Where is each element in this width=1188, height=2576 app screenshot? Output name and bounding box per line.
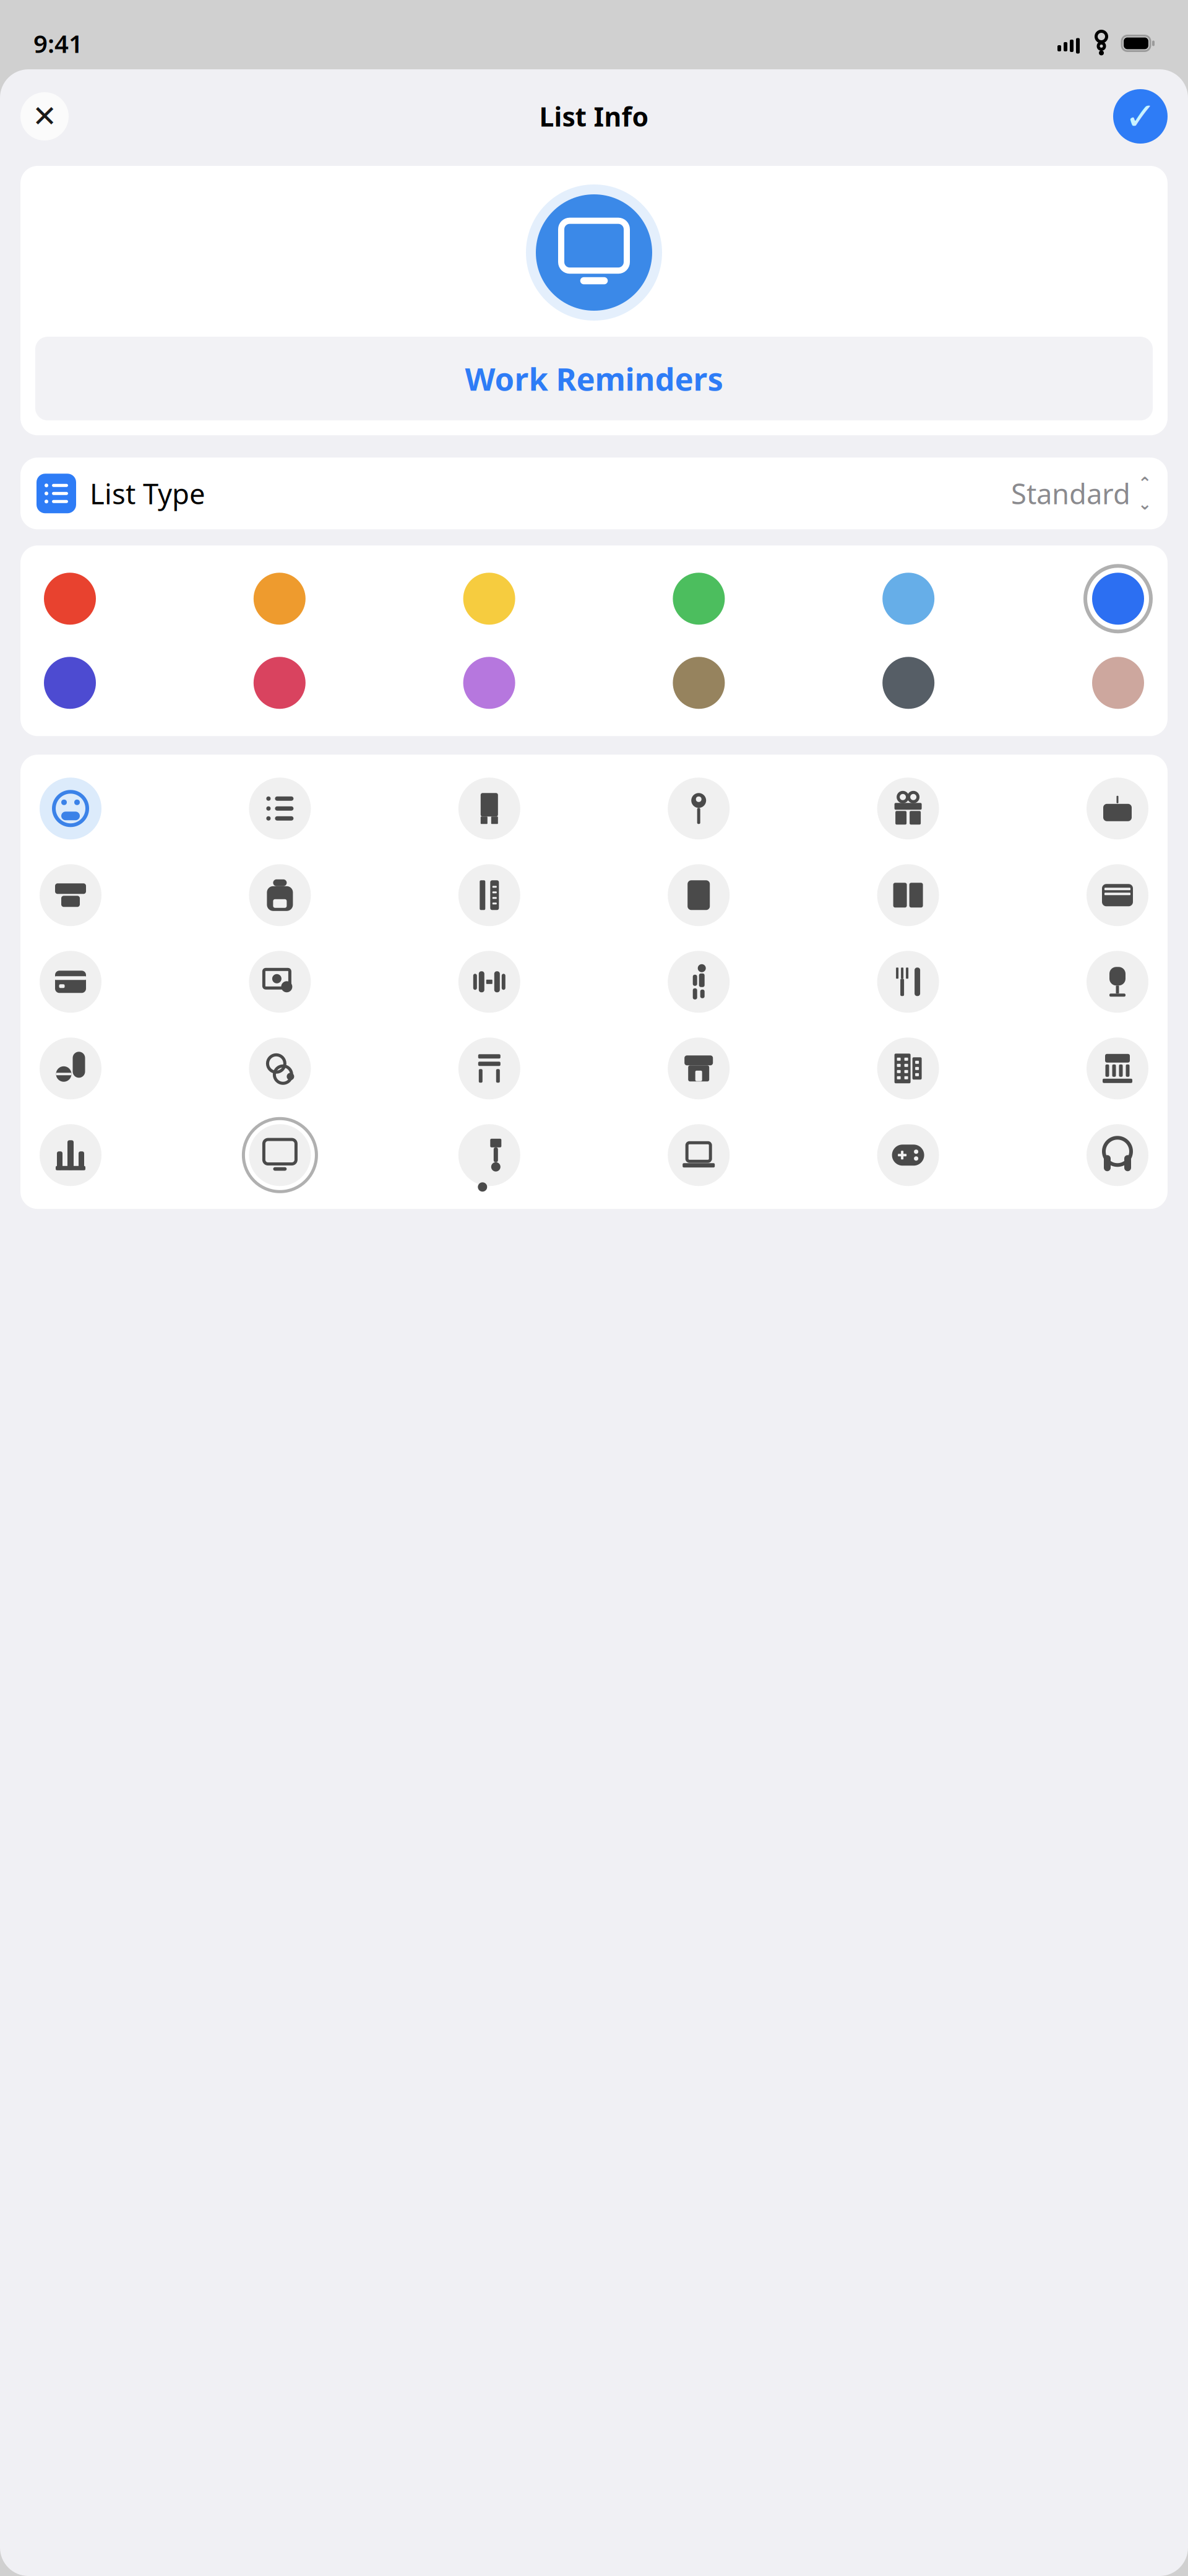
- button[interactable]: Display: [243, 1119, 316, 1192]
- button[interactable]: Colour 11: [874, 648, 943, 718]
- button[interactable]: Music: [453, 1119, 526, 1192]
- button[interactable]: Wallet: [1081, 859, 1154, 932]
- button[interactable]: Colour 1: [35, 564, 105, 633]
- button[interactable]: Book: [872, 859, 945, 932]
- button[interactable]: Colour 12: [1083, 648, 1153, 718]
- button[interactable]: House: [662, 1032, 735, 1105]
- button[interactable]: Colour 7: [35, 648, 105, 718]
- staticText: Work Reminders: [465, 358, 723, 399]
- staticText: ✓: [1125, 95, 1156, 138]
- button[interactable]: Credit card: [34, 945, 107, 1018]
- button[interactable]: Done: [1113, 89, 1168, 144]
- button[interactable]: Colour 2: [245, 564, 314, 633]
- button[interactable]: Dining: [872, 945, 945, 1018]
- button[interactable]: Bookmark: [453, 772, 526, 845]
- button[interactable]: Gift: [872, 772, 945, 845]
- button[interactable]: Pin: [662, 772, 735, 845]
- button[interactable]: Smiley: [34, 772, 107, 845]
- button[interactable]: Document: [662, 859, 735, 932]
- button[interactable]: Game controller: [872, 1119, 945, 1192]
- staticText: ✕: [32, 100, 57, 133]
- button[interactable]: Chair: [453, 1032, 526, 1105]
- button[interactable]: Laptop: [662, 1119, 735, 1192]
- staticText: ⌄: [1138, 494, 1151, 513]
- button[interactable]: Wine glass: [1081, 945, 1154, 1018]
- button[interactable]: List Type: [20, 458, 1168, 529]
- button[interactable]: Colour 4: [664, 564, 733, 633]
- button[interactable]: Colour 9: [455, 648, 524, 718]
- button[interactable]: Stethoscope: [243, 1032, 316, 1105]
- button[interactable]: Running: [662, 945, 735, 1018]
- button[interactable]: Cake: [1081, 772, 1154, 845]
- button[interactable]: Building: [872, 1032, 945, 1105]
- staticText: ⌃: [1138, 474, 1151, 493]
- button[interactable]: Colour 5: [874, 564, 943, 633]
- staticText: 9:41: [33, 27, 83, 60]
- staticText: List Type: [90, 475, 205, 512]
- staticText: Standard: [1011, 475, 1130, 512]
- button[interactable]: Colour 3: [455, 564, 524, 633]
- button[interactable]: List: [243, 772, 316, 845]
- button[interactable]: Tent: [34, 1119, 107, 1192]
- button[interactable]: Colour 6: [1083, 564, 1153, 633]
- button[interactable]: Dumbbell: [453, 945, 526, 1018]
- button[interactable]: Money: [243, 945, 316, 1018]
- button[interactable]: Pencil and ruler: [453, 859, 526, 932]
- button[interactable]: Backpack: [243, 859, 316, 932]
- staticText: List Info: [539, 99, 649, 134]
- button[interactable]: Pills: [34, 1032, 107, 1105]
- button[interactable]: Headphones: [1081, 1119, 1154, 1192]
- button[interactable]: Colour 8: [245, 648, 314, 718]
- button[interactable]: Close: [20, 92, 69, 140]
- button[interactable]: Colour 10: [664, 648, 733, 718]
- button[interactable]: Graduation cap: [34, 859, 107, 932]
- button[interactable]: Bank: [1081, 1032, 1154, 1105]
